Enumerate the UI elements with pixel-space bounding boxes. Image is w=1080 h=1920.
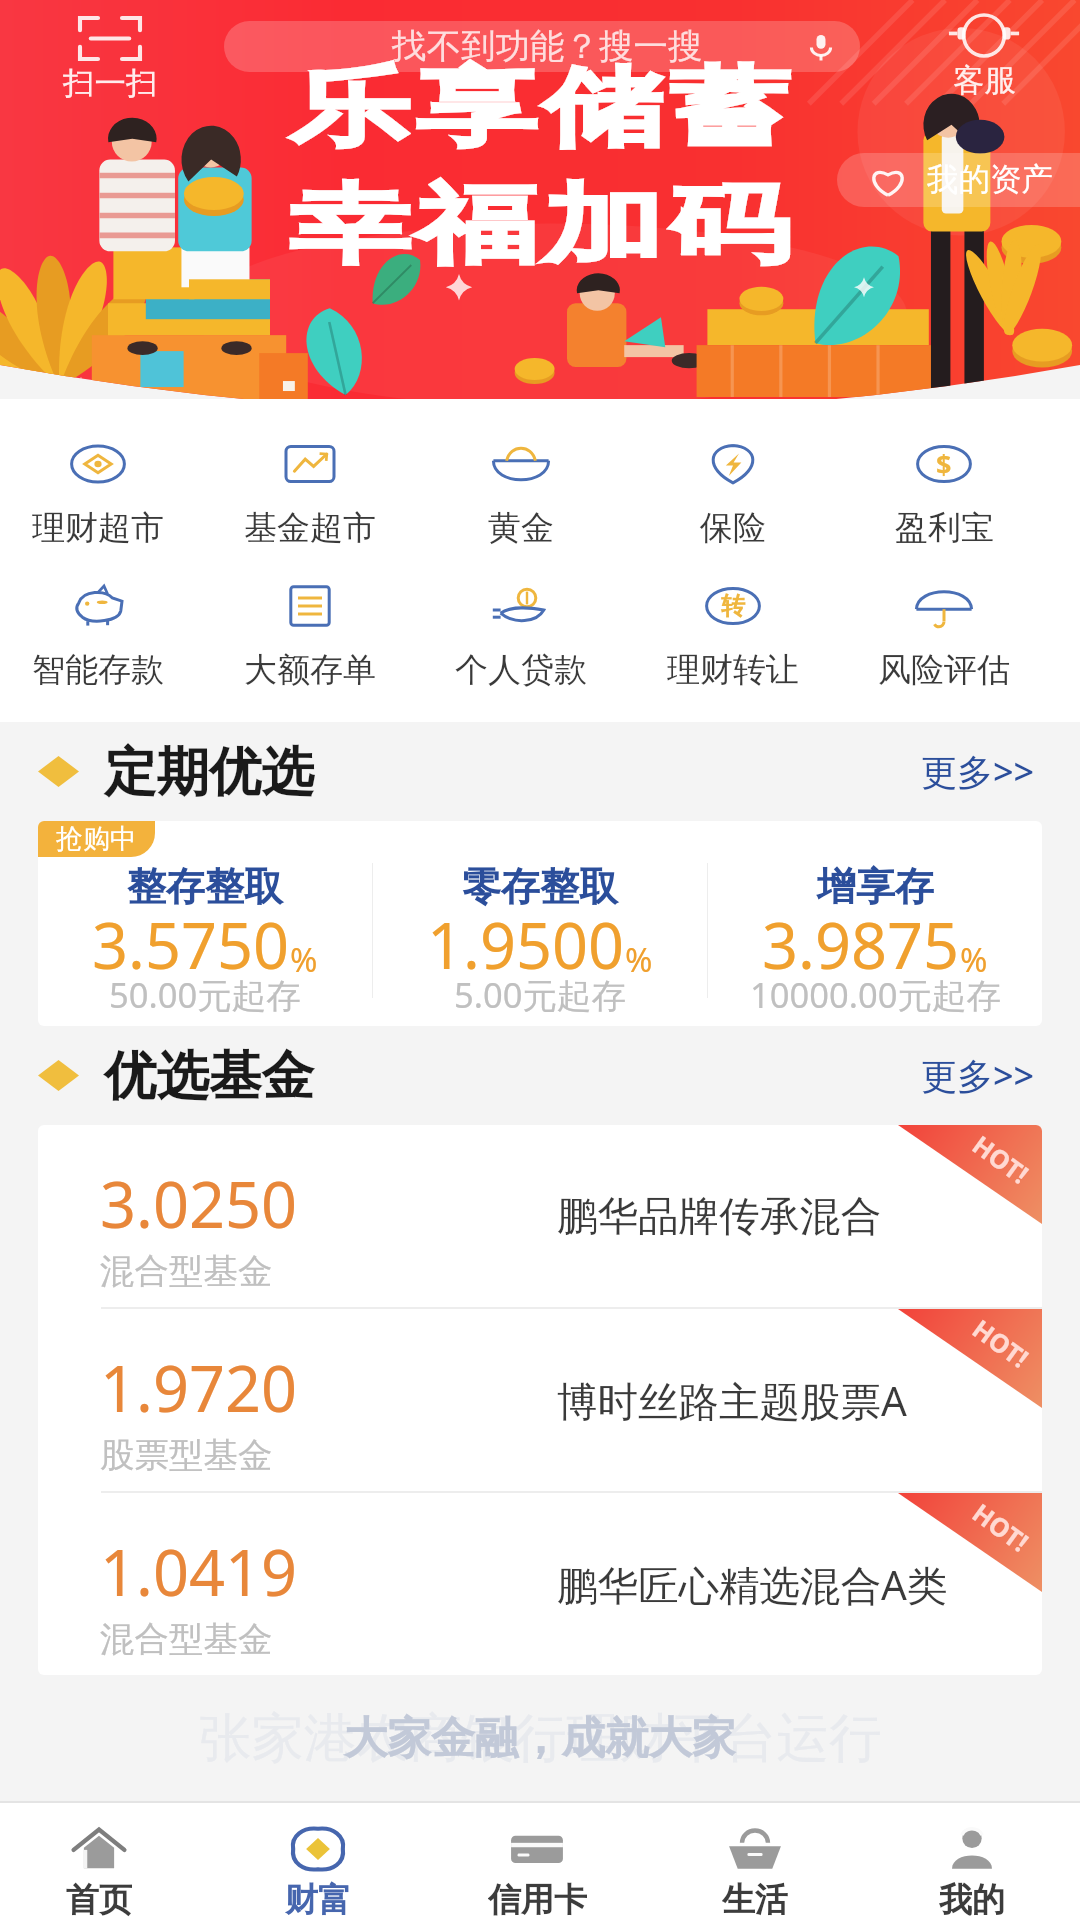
staticText: 财富 (285, 1879, 351, 1920)
button[interactable]: 黄金 (425, 444, 617, 549)
button[interactable]: 更多>> (915, 735, 1041, 808)
button[interactable]: 增享存 (708, 821, 1042, 1026)
button[interactable]: $ (848, 444, 1040, 549)
staticText: 智能存款 (32, 649, 164, 691)
staticText: 5.00元起存 (454, 971, 626, 1018)
staticText: 我的资产 (927, 160, 1053, 200)
staticText: 我的 (939, 1879, 1005, 1920)
staticText: 博时丝路主题股票A (557, 1373, 907, 1428)
button[interactable]: 1.0419 (38, 1493, 1042, 1675)
staticText: 风险评估 (878, 649, 1010, 691)
button[interactable]: 信用卡 (441, 1803, 633, 1920)
button[interactable]: 风险评估 (848, 586, 1040, 691)
button[interactable]: 整存整取 (38, 821, 372, 1026)
button[interactable]: 更多>> (915, 1039, 1041, 1112)
staticText: 整存整取 (127, 862, 283, 911)
button[interactable]: 保险 (637, 444, 829, 549)
staticText: HOT! (965, 1311, 1035, 1376)
staticText: 张家港农商银行理财平台运行 (199, 1705, 882, 1771)
other: 语音搜索 (806, 32, 836, 62)
staticText: 黄金 (488, 507, 554, 549)
staticText: 鹏华匠心精选混合A类 (557, 1557, 948, 1612)
staticText: 50.00元起存 (109, 971, 301, 1018)
button[interactable]: 大额存单 (214, 586, 406, 691)
staticText: 客服 (953, 61, 1016, 101)
staticText: 信用卡 (488, 1879, 587, 1920)
staticText: 找不到功能？搜一搜 (392, 25, 703, 68)
staticText: 首页 (66, 1879, 132, 1920)
staticText: 生活 (722, 1879, 788, 1920)
staticText: 鹏华品牌传承混合 (557, 1191, 881, 1242)
staticText: 基金超市 (244, 507, 376, 549)
staticText: % (290, 937, 318, 982)
staticText: 3.9875 (762, 902, 960, 988)
button[interactable]: 找不到功能？搜一搜 (224, 21, 860, 72)
staticText: 10000.00元起存 (750, 971, 1001, 1018)
staticText: 增享存 (817, 862, 934, 911)
button[interactable]: 智能存款 (2, 586, 194, 691)
staticText: HOT! (965, 1495, 1035, 1560)
staticText: 零存整取 (462, 862, 618, 911)
button[interactable]: 我的 (876, 1803, 1068, 1920)
staticText: % (960, 937, 988, 982)
staticText: 抢购中 (56, 822, 137, 856)
staticText: 股票型基金 (100, 1434, 273, 1477)
button[interactable]: 生活 (659, 1803, 851, 1920)
staticText: 大额存单 (244, 649, 376, 691)
staticText: 扫一扫 (63, 64, 158, 104)
staticText: $ (936, 446, 952, 483)
button[interactable]: 扫一扫 (56, 18, 164, 104)
staticText: 盈利宝 (895, 507, 994, 549)
button[interactable]: 零存整取 (373, 821, 707, 1026)
staticText: 转 (721, 591, 745, 621)
button[interactable]: 基金超市 (214, 444, 406, 549)
staticText: 幸福加码 (286, 172, 793, 279)
staticText: 大家金融，成就大家 (344, 1711, 736, 1766)
staticText: 更多>> (921, 747, 1035, 796)
staticText: 1.9500 (427, 902, 625, 988)
button[interactable]: 转 (637, 586, 829, 691)
staticText: 3.5750 (92, 902, 290, 988)
staticText: 混合型基金 (100, 1618, 273, 1661)
staticText: 优选基金 (104, 1043, 314, 1109)
button[interactable]: 1.9720 (38, 1309, 1042, 1491)
button[interactable]: 我的资产 (837, 153, 1080, 207)
staticText: 更多>> (921, 1051, 1035, 1100)
button[interactable]: 3.0250 (38, 1125, 1042, 1307)
staticText: 乐享储蓄 (286, 55, 793, 162)
staticText: 理财超市 (32, 507, 164, 549)
button[interactable]: 财富 (222, 1803, 414, 1920)
staticText: 3.0250 (100, 1161, 298, 1247)
staticText: 个人贷款 (455, 649, 587, 691)
staticText: % (625, 937, 653, 982)
button[interactable]: 个人贷款 (425, 586, 617, 691)
button[interactable]: 理财超市 (2, 444, 194, 549)
staticText: 1.0419 (100, 1529, 298, 1615)
staticText: 理财转让 (667, 649, 799, 691)
button[interactable]: 首页 (3, 1803, 195, 1920)
staticText: 保险 (700, 507, 766, 549)
staticText: HOT! (965, 1127, 1035, 1192)
staticText: 混合型基金 (100, 1250, 273, 1293)
staticText: 定期优选 (104, 739, 314, 805)
staticText: 1.9720 (100, 1345, 298, 1431)
button[interactable]: 客服 (936, 15, 1032, 101)
